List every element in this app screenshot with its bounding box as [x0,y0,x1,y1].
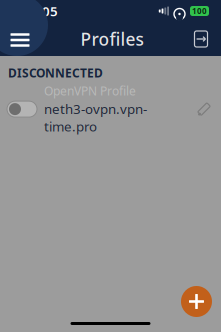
staticText: neth3-ovpn.vpn-time.pro [44,100,147,135]
staticText: OpenVPN Profile [44,83,136,99]
button[interactable]: Connect profile [0,92,44,126]
button[interactable]: Import profile [184,22,218,56]
staticText: 100 [192,6,207,16]
staticText: 21:05 [22,2,58,20]
button[interactable]: Add profile [181,286,212,317]
button[interactable]: Menu [0,22,40,58]
button[interactable]: Edit profile [189,92,219,126]
staticText: DISCONNECTED [8,65,103,81]
staticText: Profiles [80,27,143,50]
